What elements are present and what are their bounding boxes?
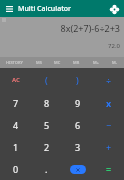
staticText: ) — [76, 74, 79, 86]
staticText: 1 — [13, 141, 19, 153]
button[interactable]: ÷ — [93, 68, 124, 91]
staticText: MR — [73, 60, 80, 65]
staticText: 7 — [13, 97, 19, 109]
staticText: − — [106, 119, 112, 131]
staticText: M- — [112, 60, 117, 65]
staticText: 9 — [75, 97, 81, 109]
button[interactable]: HISTORY — [0, 57, 29, 68]
button[interactable]: 3 — [62, 136, 93, 158]
staticText: ( — [45, 74, 48, 86]
staticText: Multi Calculator — [18, 4, 72, 14]
button[interactable]: MS — [29, 57, 48, 68]
staticText: = — [106, 163, 112, 175]
button[interactable]: 2 — [31, 136, 62, 158]
button[interactable]: = — [93, 158, 124, 180]
button[interactable]: 0 — [0, 158, 31, 180]
button[interactable]: ) — [62, 68, 93, 91]
staticText: M+ — [93, 60, 99, 65]
button[interactable]: 7 — [0, 91, 31, 114]
button[interactable]: AC — [0, 68, 31, 91]
staticText: 3 — [75, 141, 81, 153]
button[interactable]: MR — [67, 57, 86, 68]
button[interactable]: 9 — [62, 91, 93, 114]
button[interactable]: − — [93, 114, 124, 136]
staticText: 8x(2+7)-6÷2+3 — [60, 22, 120, 34]
button[interactable]: Open navigation menu — [4, 3, 15, 14]
staticText: MC — [54, 60, 61, 65]
staticText: MS — [36, 60, 42, 65]
staticText: AC — [12, 76, 20, 84]
staticText: 0 — [13, 163, 19, 175]
button[interactable]: . — [31, 158, 62, 180]
staticText: 5 — [44, 119, 50, 131]
button[interactable]: x — [93, 91, 124, 114]
staticText: . — [45, 163, 48, 175]
staticText: HISTORY — [6, 60, 23, 65]
staticText: 2 — [44, 141, 50, 153]
button[interactable]: 6 — [62, 114, 93, 136]
button[interactable]: 1 — [0, 136, 31, 158]
button[interactable]: 5 — [31, 114, 62, 136]
button[interactable]: M+ — [86, 57, 105, 68]
staticText: 4 — [13, 119, 19, 131]
button[interactable]: Backspace — [62, 158, 93, 180]
button[interactable]: ( — [31, 68, 62, 91]
staticText: 8 — [44, 97, 50, 109]
staticText: 6 — [75, 119, 81, 131]
staticText: ÷ — [106, 74, 112, 86]
staticText: 72.0 — [108, 42, 120, 50]
button[interactable]: 4 — [0, 114, 31, 136]
button[interactable]: M- — [105, 57, 124, 68]
button[interactable]: + — [93, 136, 124, 158]
staticText: x — [106, 97, 112, 109]
staticText: + — [106, 141, 112, 153]
button[interactable]: Settings — [108, 3, 120, 15]
button[interactable]: MC — [48, 57, 67, 68]
button[interactable]: 8 — [31, 91, 62, 114]
